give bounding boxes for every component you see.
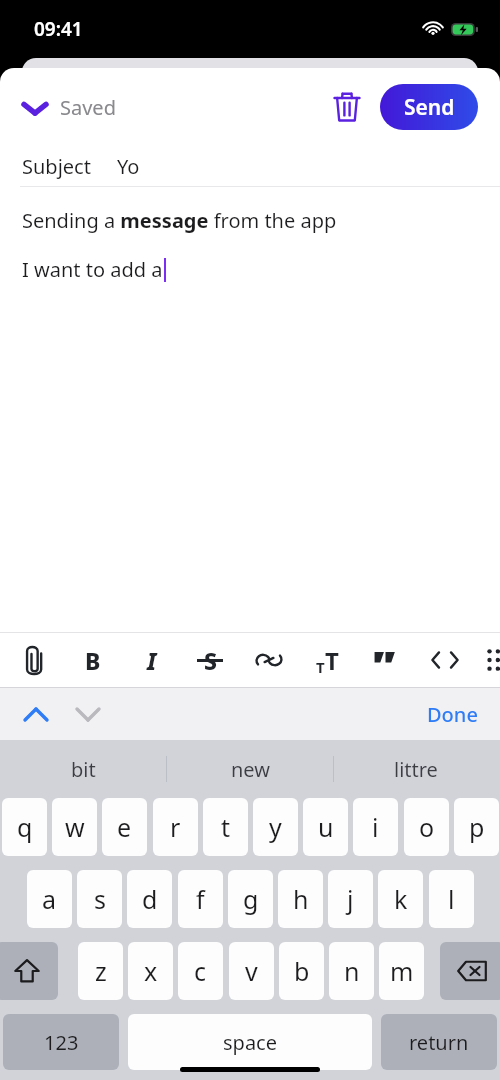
staticText: b [294,954,310,988]
button[interactable]: a [27,870,72,928]
button[interactable]: k [378,870,423,928]
staticText: a [42,882,57,916]
staticText: l [448,882,455,916]
button[interactable]: o [404,798,449,856]
staticText: 123 [44,1029,79,1056]
button[interactable]: l [429,870,474,928]
button[interactable]: s [77,870,122,928]
button[interactable]: Done [419,693,486,736]
staticText: q [17,810,33,844]
button[interactable]: r [153,798,198,856]
staticText: h [293,882,309,916]
staticText: return [409,1029,469,1056]
button[interactable]: n [329,942,374,1000]
button[interactable]: More [470,633,500,687]
button[interactable]: return [381,1014,497,1070]
staticText: littre [394,756,438,783]
button[interactable]: e [102,798,147,856]
staticText: f [196,882,205,916]
staticText: j [347,882,354,916]
staticText: r [170,810,181,844]
button[interactable]: 123 [3,1014,119,1070]
staticText: bit [71,756,96,783]
button[interactable]: q [2,798,47,856]
staticText: I want to add a [22,256,163,283]
staticText: d [142,882,158,916]
staticText: v [245,954,258,988]
staticText: e [117,810,132,844]
button[interactable]: Attach [11,633,59,687]
staticText: space [223,1029,277,1056]
staticText: Send [404,93,455,122]
staticText: m [390,954,414,988]
button[interactable]: i [353,798,398,856]
button[interactable]: w [52,798,97,856]
button[interactable]: f [178,870,223,928]
staticText: t [221,810,231,844]
staticText: n [344,954,360,988]
staticText: c [194,954,207,988]
button[interactable]: Previous field [14,692,58,736]
staticText: S [204,645,217,676]
button[interactable]: new [167,740,333,798]
button[interactable]: g [228,870,273,928]
staticText: w [65,810,85,844]
staticText: k [394,882,408,916]
staticText: z [95,954,107,988]
button[interactable]: h [278,870,323,928]
button[interactable]: b [279,942,324,1000]
button[interactable]: t [203,798,248,856]
staticText: g [243,882,259,916]
staticText: o [419,810,435,844]
staticText: Sending a message from the app [22,207,337,234]
staticText: Subject [22,153,91,180]
staticText: 09:41 [34,16,83,42]
button[interactable]: Backspace [440,942,500,1000]
button[interactable]: d [127,870,172,928]
button[interactable]: Text size [303,633,351,687]
button[interactable]: Quote [362,633,410,687]
button[interactable]: p [454,798,499,856]
button[interactable]: u [303,798,348,856]
staticText: y [269,810,282,844]
staticText: u [318,810,334,844]
button[interactable]: c [178,942,223,1000]
button[interactable]: v [229,942,274,1000]
button[interactable]: Code [421,633,469,687]
staticText: T [316,657,325,677]
button[interactable]: Shift [0,942,58,1000]
staticText: Yo [117,153,140,180]
staticText: B [85,645,101,676]
button[interactable]: Saved [18,90,120,125]
staticText: p [469,810,485,844]
staticText: s [94,882,106,916]
staticText: Done [427,701,478,728]
button[interactable]: Italic [128,633,176,687]
button[interactable]: Strikethrough [186,633,234,687]
staticText: Saved [60,94,116,121]
button[interactable]: Send [380,84,478,130]
staticText: I [147,645,157,676]
button[interactable]: m [379,942,424,1000]
button[interactable]: littre [333,740,499,798]
button[interactable]: j [328,870,373,928]
button[interactable]: space [128,1014,372,1070]
button[interactable]: Subject [0,146,500,186]
button[interactable]: Bold [69,633,117,687]
button[interactable]: Next field [66,692,110,736]
button[interactable]: bit [0,740,166,798]
button[interactable]: Delete [324,84,370,130]
staticText: i [372,810,379,844]
staticText: new [231,756,270,783]
button[interactable]: y [253,798,298,856]
staticText: T [325,644,339,677]
staticText: x [144,954,158,988]
button[interactable]: x [128,942,173,1000]
button[interactable]: z [78,942,123,1000]
button[interactable]: Link [245,633,293,687]
